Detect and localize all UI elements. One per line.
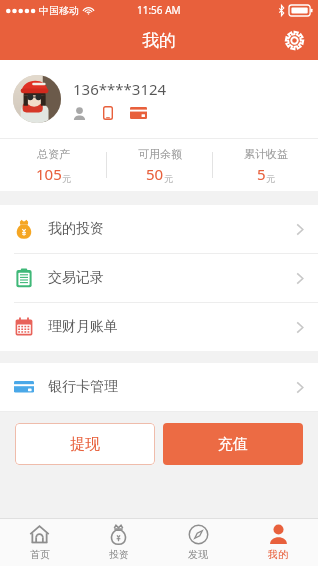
staticText: 136****3124 [73, 79, 167, 99]
button[interactable]: 可用余额 [107, 147, 212, 184]
staticText: 理财月账单 [48, 318, 118, 336]
staticText: 交易记录 [48, 269, 104, 287]
staticText: 5 [257, 164, 266, 184]
button[interactable]: 提现 [15, 423, 155, 465]
staticText: 中国移动 [39, 4, 79, 17]
staticText: 11:56 AM [137, 3, 181, 17]
staticText: 我的 [268, 548, 288, 561]
button[interactable]: 我的 [238, 519, 318, 566]
button[interactable]: 发现 [158, 519, 238, 566]
staticText: 元 [266, 173, 275, 184]
staticText: 我的 [142, 30, 176, 51]
staticText: 银行卡管理 [48, 378, 118, 396]
staticText: 提现 [70, 435, 100, 454]
staticText: 105 [36, 164, 62, 184]
staticText: 可用余额 [138, 147, 182, 161]
staticText: 我的投资 [48, 220, 104, 238]
button[interactable]: 总资产 [0, 147, 106, 184]
staticText: 投资 [109, 548, 129, 561]
button[interactable]: 累计收益 [213, 147, 318, 184]
staticText: 元 [62, 173, 71, 184]
button[interactable]: 首页 [0, 519, 79, 566]
button[interactable]: 投资 [79, 519, 158, 566]
button[interactable]: 我的投资 [0, 205, 318, 253]
button[interactable]: 银行卡管理 [0, 363, 318, 411]
button[interactable]: Settings [278, 24, 310, 56]
button[interactable]: 理财月账单 [0, 303, 318, 351]
staticText: 累计收益 [244, 147, 288, 161]
staticText: 首页 [30, 548, 50, 561]
button[interactable]: 136****3124 [0, 60, 318, 138]
staticText: 元 [164, 173, 173, 184]
staticText: 发现 [188, 548, 208, 561]
staticText: 总资产 [37, 147, 70, 161]
button[interactable]: 交易记录 [0, 254, 318, 302]
button[interactable]: 充值 [163, 423, 303, 465]
staticText: 充值 [218, 435, 248, 454]
staticText: 50 [146, 164, 164, 184]
